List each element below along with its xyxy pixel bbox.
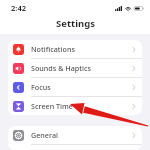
staticText: Focus bbox=[31, 82, 51, 92]
button[interactable]: Sounds & Haptics bbox=[8, 59, 142, 77]
staticText: 2:42 bbox=[11, 3, 26, 13]
staticText: Notifications bbox=[31, 44, 75, 54]
button[interactable]: General bbox=[8, 126, 142, 144]
button[interactable]: Notifications bbox=[8, 40, 142, 58]
staticText: Sounds & Haptics bbox=[31, 63, 92, 73]
staticText: Screen Time bbox=[31, 101, 73, 111]
button[interactable]: Focus bbox=[8, 78, 142, 96]
staticText: Settings bbox=[56, 17, 95, 30]
button[interactable]: Screen Time bbox=[8, 97, 142, 115]
staticText: General bbox=[31, 130, 58, 140]
